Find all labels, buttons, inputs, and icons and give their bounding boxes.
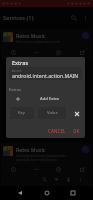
button[interactable]: Search: [39, 174, 50, 185]
button[interactable]: Info: [8, 47, 19, 58]
staticText: Add Extra: [40, 96, 59, 102]
button[interactable]: Shortcut: [53, 164, 64, 175]
staticText: Extras: [9, 87, 22, 93]
button[interactable]: Enabled toggle: [82, 32, 89, 39]
staticText: OK: [73, 128, 80, 134]
staticText: free.no.pure.automatic.world: [16, 40, 60, 44]
button[interactable]: Action: [9, 67, 82, 80]
button[interactable]: Retro Music: [1, 143, 92, 175]
button[interactable]: Filter: [51, 174, 62, 185]
staticText: Value: [47, 110, 58, 116]
button[interactable]: Remove extra: [71, 108, 82, 119]
button[interactable]: Open: [77, 47, 88, 58]
staticText: Retro Music: [16, 32, 46, 39]
button[interactable]: Back: [13, 186, 27, 200]
staticText: Retro Music: [16, 146, 46, 153]
button[interactable]: Search: [1, 173, 92, 186]
button[interactable]: CANCEL: [47, 127, 67, 135]
staticText: ystemjob.SystemJobService: [16, 158, 57, 162]
button[interactable]: More options: [80, 13, 91, 24]
button[interactable]: Open: [77, 164, 88, 175]
button[interactable]: Enabled toggle: [82, 146, 89, 153]
staticText: android.intent.action.MAIN: [12, 72, 79, 79]
staticText: Action: [12, 69, 22, 73]
button[interactable]: Shortcut: [53, 47, 64, 58]
button[interactable]: Add Extra: [9, 95, 82, 103]
button[interactable]: OK: [72, 127, 81, 135]
staticText: Services (1): [3, 14, 34, 22]
staticText: androidx.work.impl.background.s: [16, 154, 67, 158]
staticText: CANCEL: [48, 128, 66, 134]
button[interactable]: Retro Music: [1, 29, 92, 58]
staticText: Key: [18, 110, 26, 116]
button[interactable]: Home: [40, 186, 54, 200]
button[interactable]: Value: [38, 107, 66, 119]
button[interactable]: More: [31, 47, 42, 58]
staticText: Extras: [12, 59, 29, 67]
button[interactable]: Search: [68, 12, 80, 24]
button[interactable]: Info: [8, 164, 19, 175]
button[interactable]: Recents: [66, 186, 80, 200]
button[interactable]: Account: [63, 174, 74, 185]
button[interactable]: Key: [10, 107, 34, 119]
